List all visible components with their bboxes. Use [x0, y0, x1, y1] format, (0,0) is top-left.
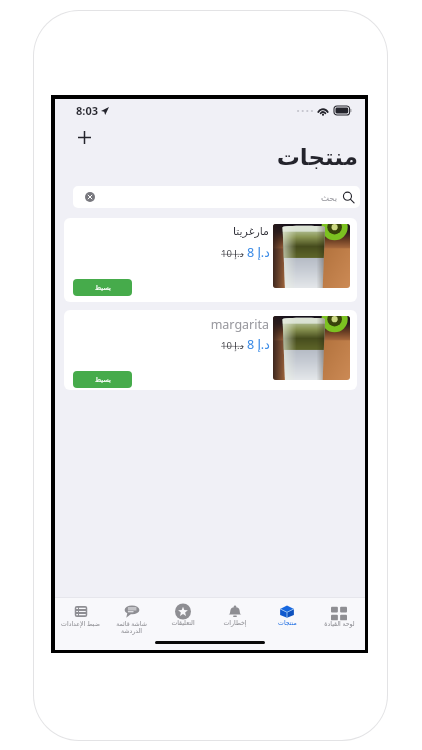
staticText: د.إ 8 — [247, 244, 270, 261]
staticText: شاشة قائمة الدردشة — [116, 619, 147, 634]
button[interactable]: margarita — [64, 310, 357, 390]
button[interactable]: Add — [73, 126, 95, 148]
staticText: منتجات — [278, 619, 297, 626]
staticText: ضبط الإعدادات — [61, 619, 100, 627]
staticText: بحث — [321, 193, 338, 203]
staticText: بسيط — [95, 284, 111, 292]
button[interactable]: لوحة القيادة — [313, 598, 365, 634]
staticText: 8:03 — [76, 103, 98, 118]
staticText: 10 د.إ — [221, 247, 244, 260]
staticText: مارغريتا — [180, 225, 269, 238]
staticText: بسيط — [95, 376, 111, 384]
button[interactable]: Clear search — [85, 192, 95, 202]
staticText: 10 د.إ — [221, 339, 244, 352]
staticText: التعليقات — [171, 619, 195, 626]
button[interactable]: شاشة قائمة الدردشة — [106, 598, 157, 634]
button[interactable]: منتجات — [261, 598, 313, 634]
button[interactable]: بحث — [73, 186, 360, 208]
button[interactable]: التعليقات — [157, 598, 209, 634]
button[interactable]: إخطارات — [209, 598, 261, 634]
staticText: إخطارات — [223, 619, 247, 626]
button[interactable]: ضبط الإعدادات — [55, 598, 106, 634]
staticText: لوحة القيادة — [324, 619, 355, 627]
staticText: منتجات — [271, 144, 358, 171]
button[interactable]: بسيط — [73, 371, 132, 388]
button[interactable]: مارغريتا — [64, 218, 357, 302]
staticText: margarita — [180, 316, 269, 333]
staticText: د.إ 8 — [247, 336, 270, 353]
button[interactable]: بسيط — [73, 279, 132, 296]
